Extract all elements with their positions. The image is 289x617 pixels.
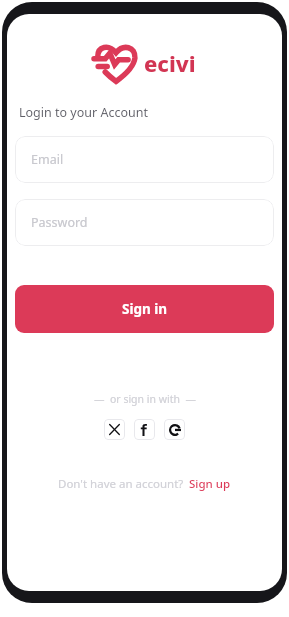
button[interactable]: Email <box>15 136 274 183</box>
staticText: Password <box>31 214 88 231</box>
staticText: Don't have an account? <box>58 476 184 492</box>
staticText: Email <box>31 151 64 168</box>
staticText: ecivi <box>144 48 196 78</box>
staticText: Sign in <box>122 300 168 318</box>
button[interactable]: Sign in with X <box>104 419 125 440</box>
staticText: Login to your Account <box>19 104 148 121</box>
button[interactable]: Sign up <box>189 476 231 492</box>
button[interactable]: Sign in <box>15 285 274 333</box>
staticText: Sign up <box>189 476 231 492</box>
button[interactable]: Password <box>15 199 274 246</box>
button[interactable]: Sign in with Facebook <box>134 419 155 440</box>
button[interactable]: Sign in with Google <box>164 419 185 440</box>
staticText: — or sign in with — <box>94 392 196 406</box>
